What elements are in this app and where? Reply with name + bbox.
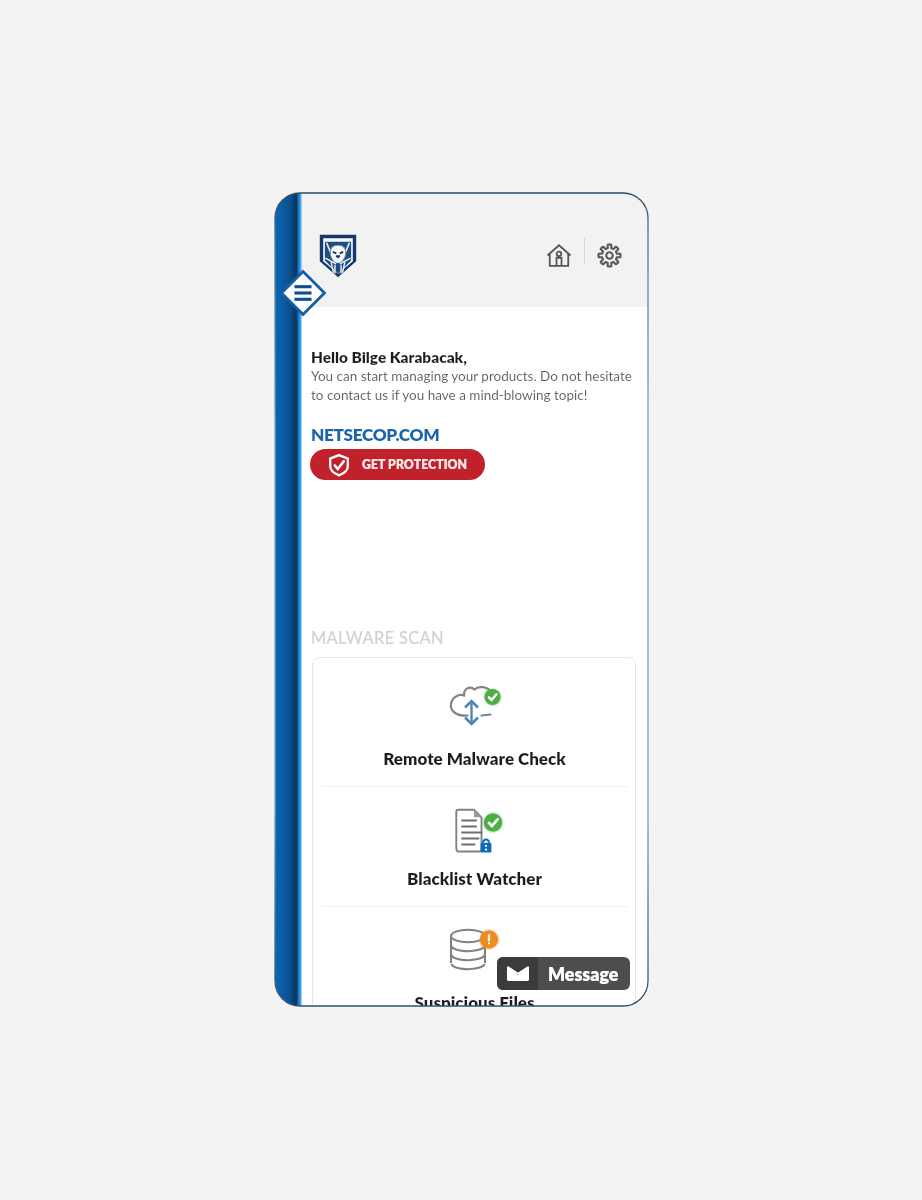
button[interactable]: Home [544,240,574,270]
staticText: MALWARE SCAN [311,628,444,648]
staticText: Blacklist Watcher [407,868,542,888]
button[interactable]: GET PROTECTION [310,449,485,480]
staticText: Remote Malware Check [383,748,566,768]
staticText: Hello Bilge Karabacak, [311,348,467,366]
staticText: Suspicious Files [414,992,535,1006]
staticText: You can start managing your products. Do… [311,368,632,403]
button[interactable]: Remote Malware Check [312,657,636,786]
staticText: Message [548,963,619,984]
button[interactable]: Blacklist Watcher [312,787,636,906]
staticText: NETSECOP.COM [311,424,440,445]
button[interactable]: Settings [594,240,624,270]
button[interactable]: Menu [279,269,327,317]
button[interactable]: Message [497,957,630,990]
button[interactable]: Suspicious Files [312,907,636,1006]
staticText: GET PROTECTION [362,457,468,472]
